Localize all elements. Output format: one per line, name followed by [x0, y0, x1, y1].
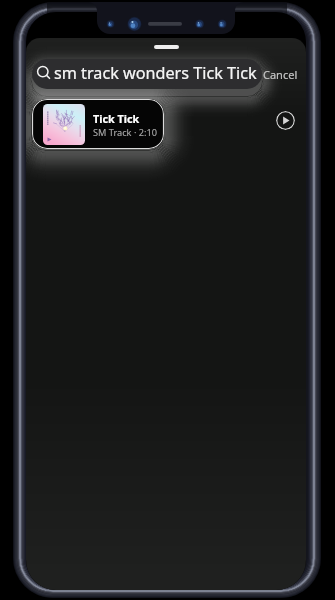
button[interactable]: Tick Tick [32, 99, 164, 149]
staticText: Tick Tick [93, 111, 140, 126]
staticText: sm track wonders Tick Tick [54, 62, 257, 84]
staticText: SM Track · 2:10 [93, 126, 157, 139]
button[interactable]: sm track wonders Tick Tick [32, 59, 262, 89]
staticText: Cancel [263, 67, 298, 82]
button[interactable]: Cancel [263, 67, 298, 82]
button[interactable]: Play [276, 111, 295, 130]
